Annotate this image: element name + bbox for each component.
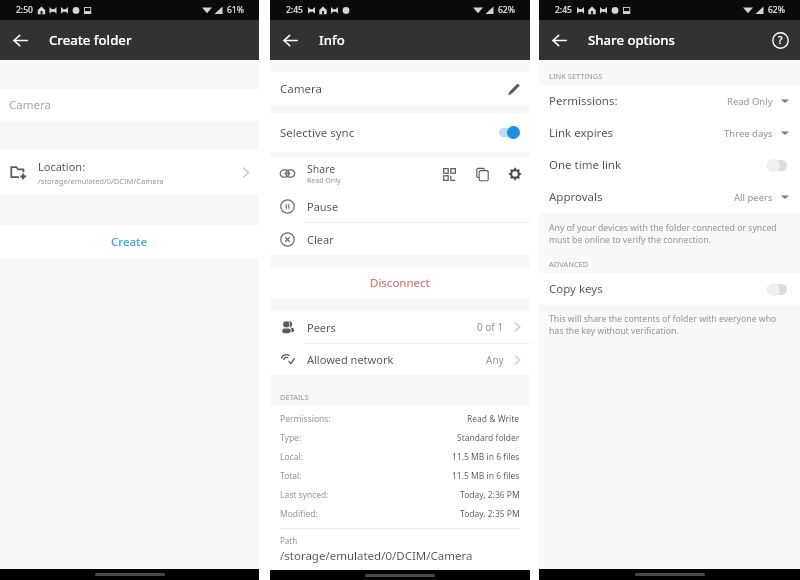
staticText: Camera — [280, 81, 322, 97]
staticText: 62% — [768, 4, 785, 16]
button[interactable]: Toggle — [767, 158, 789, 172]
staticText: Info — [319, 31, 345, 49]
button[interactable]: Back — [539, 20, 579, 60]
staticText: Create folder — [49, 31, 132, 49]
button[interactable]: Toggle — [499, 125, 521, 140]
button[interactable]: Copy keys — [539, 273, 800, 305]
staticText: Allowed network — [307, 352, 394, 367]
staticText: /storage/emulated/0/DCIM/Camera — [280, 548, 473, 564]
staticText: 0 of 1 — [477, 320, 504, 334]
staticText: Any of your devices with the folder conn… — [549, 222, 784, 246]
staticText: One time link — [549, 157, 622, 173]
button[interactable]: Create — [0, 225, 259, 258]
staticText: Standard folder — [457, 432, 520, 444]
staticText: Path — [280, 535, 298, 546]
staticText: Create — [111, 234, 148, 250]
staticText: Selective sync — [280, 125, 355, 141]
button[interactable]: Camera — [270, 72, 530, 105]
staticText: Permissions: — [549, 93, 618, 109]
staticText: Camera — [9, 97, 51, 113]
staticText: LINK SETTINGS — [549, 71, 603, 81]
button[interactable]: Camera — [0, 89, 259, 121]
button[interactable]: Permissions: — [539, 85, 800, 117]
staticText: Read & Write — [467, 413, 520, 425]
staticText: Read Only — [727, 95, 773, 108]
button[interactable]: Settings — [502, 161, 528, 187]
staticText: Type: — [280, 432, 302, 444]
staticText: Today, 2:36 PM — [460, 489, 520, 501]
staticText: 2:45 — [286, 4, 303, 16]
staticText: This will share the contents of folder w… — [549, 313, 784, 337]
staticText: 2:50 — [16, 4, 33, 16]
button[interactable]: Help — [760, 20, 800, 60]
staticText: 2:45 — [555, 4, 572, 16]
staticText: 11.5 MB in 6 files — [452, 451, 520, 463]
staticText: 61% — [227, 4, 244, 16]
staticText: Today, 2:35 PM — [460, 508, 520, 520]
button[interactable]: Toggle — [767, 282, 789, 296]
staticText: Share — [307, 162, 336, 176]
button[interactable]: Back — [270, 20, 310, 60]
button[interactable]: Copy — [469, 161, 495, 187]
button[interactable]: Share — [270, 157, 530, 190]
staticText: Clear — [307, 232, 334, 247]
button[interactable]: Approvals — [539, 181, 800, 213]
staticText: ADVANCED — [549, 259, 589, 269]
staticText: Location: — [38, 159, 86, 174]
staticText: All peers — [734, 191, 773, 204]
staticText: Local: — [280, 451, 303, 463]
staticText: 62% — [498, 4, 515, 16]
staticText: Last synced: — [280, 489, 329, 501]
button[interactable]: Allowed network — [270, 344, 530, 375]
button[interactable]: QR code — [436, 161, 462, 187]
staticText: 11.5 MB in 6 files — [452, 470, 520, 482]
staticText: ? — [778, 33, 783, 47]
staticText: Any — [486, 353, 504, 367]
button[interactable]: Clear — [270, 223, 530, 255]
staticText: /storage/emulated/0/DCIM/Camera — [38, 176, 164, 186]
button[interactable]: One time link — [539, 149, 800, 181]
staticText: Link expires — [549, 125, 614, 141]
staticText: Pause — [307, 199, 339, 214]
button[interactable]: Location: — [0, 150, 259, 194]
staticText: Total: — [280, 470, 302, 482]
button[interactable]: Pause — [270, 190, 530, 222]
staticText: Approvals — [549, 189, 603, 205]
staticText: Disconnect — [370, 275, 430, 291]
button[interactable]: Back — [0, 20, 40, 60]
staticText: DETAILS — [280, 392, 309, 402]
staticText: Read Only — [307, 176, 341, 186]
staticText: Modified: — [280, 508, 318, 520]
staticText: Peers — [307, 320, 336, 335]
staticText: Three days — [724, 127, 773, 140]
staticText: Share options — [588, 31, 675, 49]
button[interactable]: Selective sync — [270, 113, 530, 152]
button[interactable]: Link expires — [539, 117, 800, 149]
staticText: Copy keys — [549, 281, 603, 297]
button[interactable]: Disconnect — [270, 268, 530, 298]
staticText: Permissions: — [280, 413, 331, 425]
button[interactable]: Peers — [270, 311, 530, 343]
